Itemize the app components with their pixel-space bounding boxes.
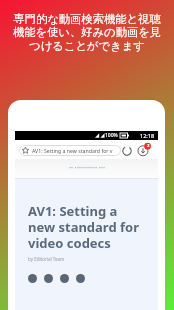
button[interactable] [76, 274, 85, 283]
button[interactable] [28, 274, 37, 283]
button[interactable]: Reload page [120, 144, 134, 158]
button[interactable] [60, 274, 69, 283]
staticText: 12:18 [140, 132, 155, 139]
staticText: 100% [105, 132, 118, 139]
button[interactable]: AV1: Setting a new standard for v [19, 145, 121, 156]
button[interactable] [44, 274, 53, 283]
staticText: AV1: Setting a new standard for v [32, 147, 113, 154]
staticText: 専門的な動画検索機能と視聴 機能を使い、好みの動画を見 つけることができます [0, 12, 174, 54]
staticText: by Editorial Team [28, 256, 65, 262]
staticText: •• ••••••••••• ••• [69, 164, 105, 171]
staticText: 2 [147, 143, 150, 149]
button[interactable]: Downloads [136, 143, 150, 157]
staticText: AV1: Setting a new standard for video co… [28, 202, 139, 252]
